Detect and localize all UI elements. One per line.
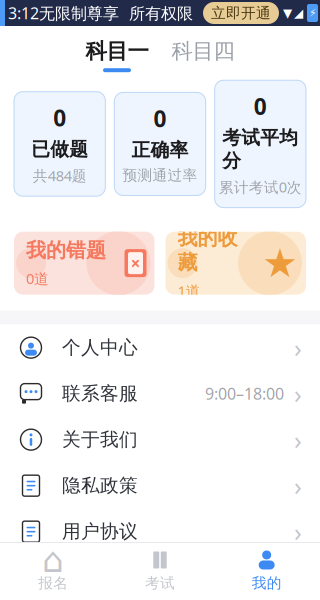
- staticText: ›: [294, 331, 302, 364]
- button[interactable]: 考试: [107, 543, 213, 600]
- staticText: 0道: [26, 269, 49, 288]
- staticText: ×: [130, 252, 140, 275]
- button[interactable]: 关于我们: [0, 417, 320, 463]
- staticText: ›: [294, 469, 302, 502]
- button[interactable]: 个人中心: [0, 325, 320, 371]
- button[interactable]: 隐私政策: [0, 463, 320, 509]
- staticText: 共484题: [33, 166, 87, 185]
- staticText: 科目四: [171, 38, 234, 64]
- staticText: 正确率: [131, 138, 188, 161]
- staticText: ›: [294, 377, 302, 410]
- button[interactable]: ⌂: [0, 543, 107, 600]
- button[interactable]: 我的: [213, 543, 320, 600]
- staticText: ▼: [283, 6, 292, 20]
- staticText: 0: [53, 103, 66, 133]
- staticText: ›: [294, 515, 302, 548]
- staticText: 我的收藏: [177, 226, 237, 275]
- staticText: ›: [294, 423, 302, 456]
- button[interactable]: 0: [14, 92, 105, 196]
- staticText: 0: [153, 103, 166, 133]
- staticText: 立即开通: [211, 4, 271, 22]
- staticText: 联系客服: [62, 382, 138, 405]
- staticText: 0: [254, 91, 267, 121]
- staticText: 个人中心: [62, 336, 138, 359]
- button[interactable]: 我的错题: [14, 232, 154, 295]
- staticText: ⌂: [42, 540, 64, 580]
- button[interactable]: 联系客服: [0, 371, 320, 417]
- staticText: 我的: [252, 574, 282, 592]
- staticText: 预测通过率: [122, 166, 197, 184]
- staticText: 用户协议: [62, 520, 138, 543]
- button[interactable]: 科目四: [160, 38, 246, 72]
- button[interactable]: 0: [114, 92, 206, 195]
- staticText: 3:12无限制尊享 所有权限: [8, 2, 193, 24]
- staticText: 报名: [38, 574, 68, 592]
- staticText: 考试平均分: [222, 126, 298, 172]
- staticText: 1道: [177, 281, 200, 300]
- staticText: 考试: [145, 574, 175, 592]
- staticText: 我的错题: [26, 238, 106, 263]
- staticText: 已做题: [31, 138, 88, 161]
- staticText: 9:00–18:00: [205, 383, 284, 404]
- button[interactable]: 0: [215, 80, 306, 208]
- staticText: 科目一: [85, 38, 148, 64]
- staticText: 隐私政策: [62, 474, 138, 497]
- staticText: ★: [262, 240, 298, 286]
- staticText: ⚡︎: [309, 7, 316, 19]
- button[interactable]: 我的收藏: [165, 232, 306, 295]
- staticText: ◢: [294, 6, 303, 20]
- button[interactable]: 用户协议: [0, 509, 320, 555]
- staticText: 关于我们: [62, 428, 138, 451]
- button[interactable]: 科目一: [74, 38, 160, 72]
- staticText: 累计考试0次: [219, 177, 302, 197]
